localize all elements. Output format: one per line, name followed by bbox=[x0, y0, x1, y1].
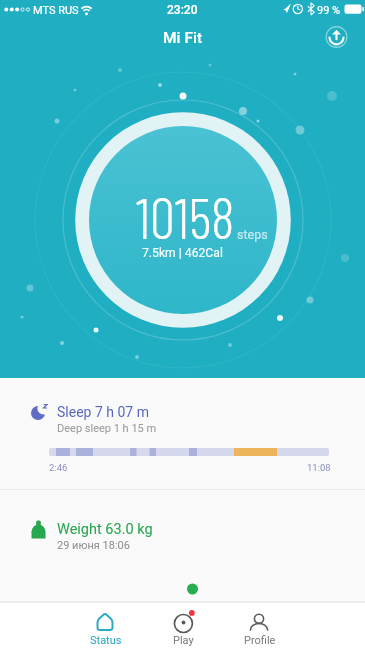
staticText: Profile bbox=[244, 634, 276, 647]
staticText: 10158 bbox=[136, 183, 235, 249]
button[interactable] bbox=[321, 22, 351, 52]
staticText: 99 % bbox=[317, 4, 341, 17]
button[interactable] bbox=[150, 602, 216, 649]
staticText: Weight 63.0 kg bbox=[57, 521, 153, 538]
staticText: steps bbox=[237, 227, 268, 242]
staticText: MTS RUS bbox=[33, 4, 79, 17]
staticText: Deep sleep 1 h 15 m bbox=[57, 422, 157, 435]
staticText: Status bbox=[90, 634, 122, 647]
button[interactable] bbox=[0, 378, 365, 490]
button[interactable] bbox=[223, 602, 289, 649]
staticText: 23:20 bbox=[167, 3, 198, 17]
staticText: Play bbox=[173, 634, 194, 647]
staticText: 11:08 bbox=[307, 462, 331, 473]
button[interactable] bbox=[72, 602, 138, 649]
staticText: Sleep 7 h 07 m bbox=[57, 404, 149, 420]
button[interactable] bbox=[0, 490, 365, 562]
staticText: 7.5km | 462Cal bbox=[142, 246, 223, 260]
staticText: 2:46 bbox=[49, 462, 68, 473]
staticText: 29 июня 18:06 bbox=[57, 539, 130, 552]
staticText: Mi Fit bbox=[163, 29, 203, 47]
